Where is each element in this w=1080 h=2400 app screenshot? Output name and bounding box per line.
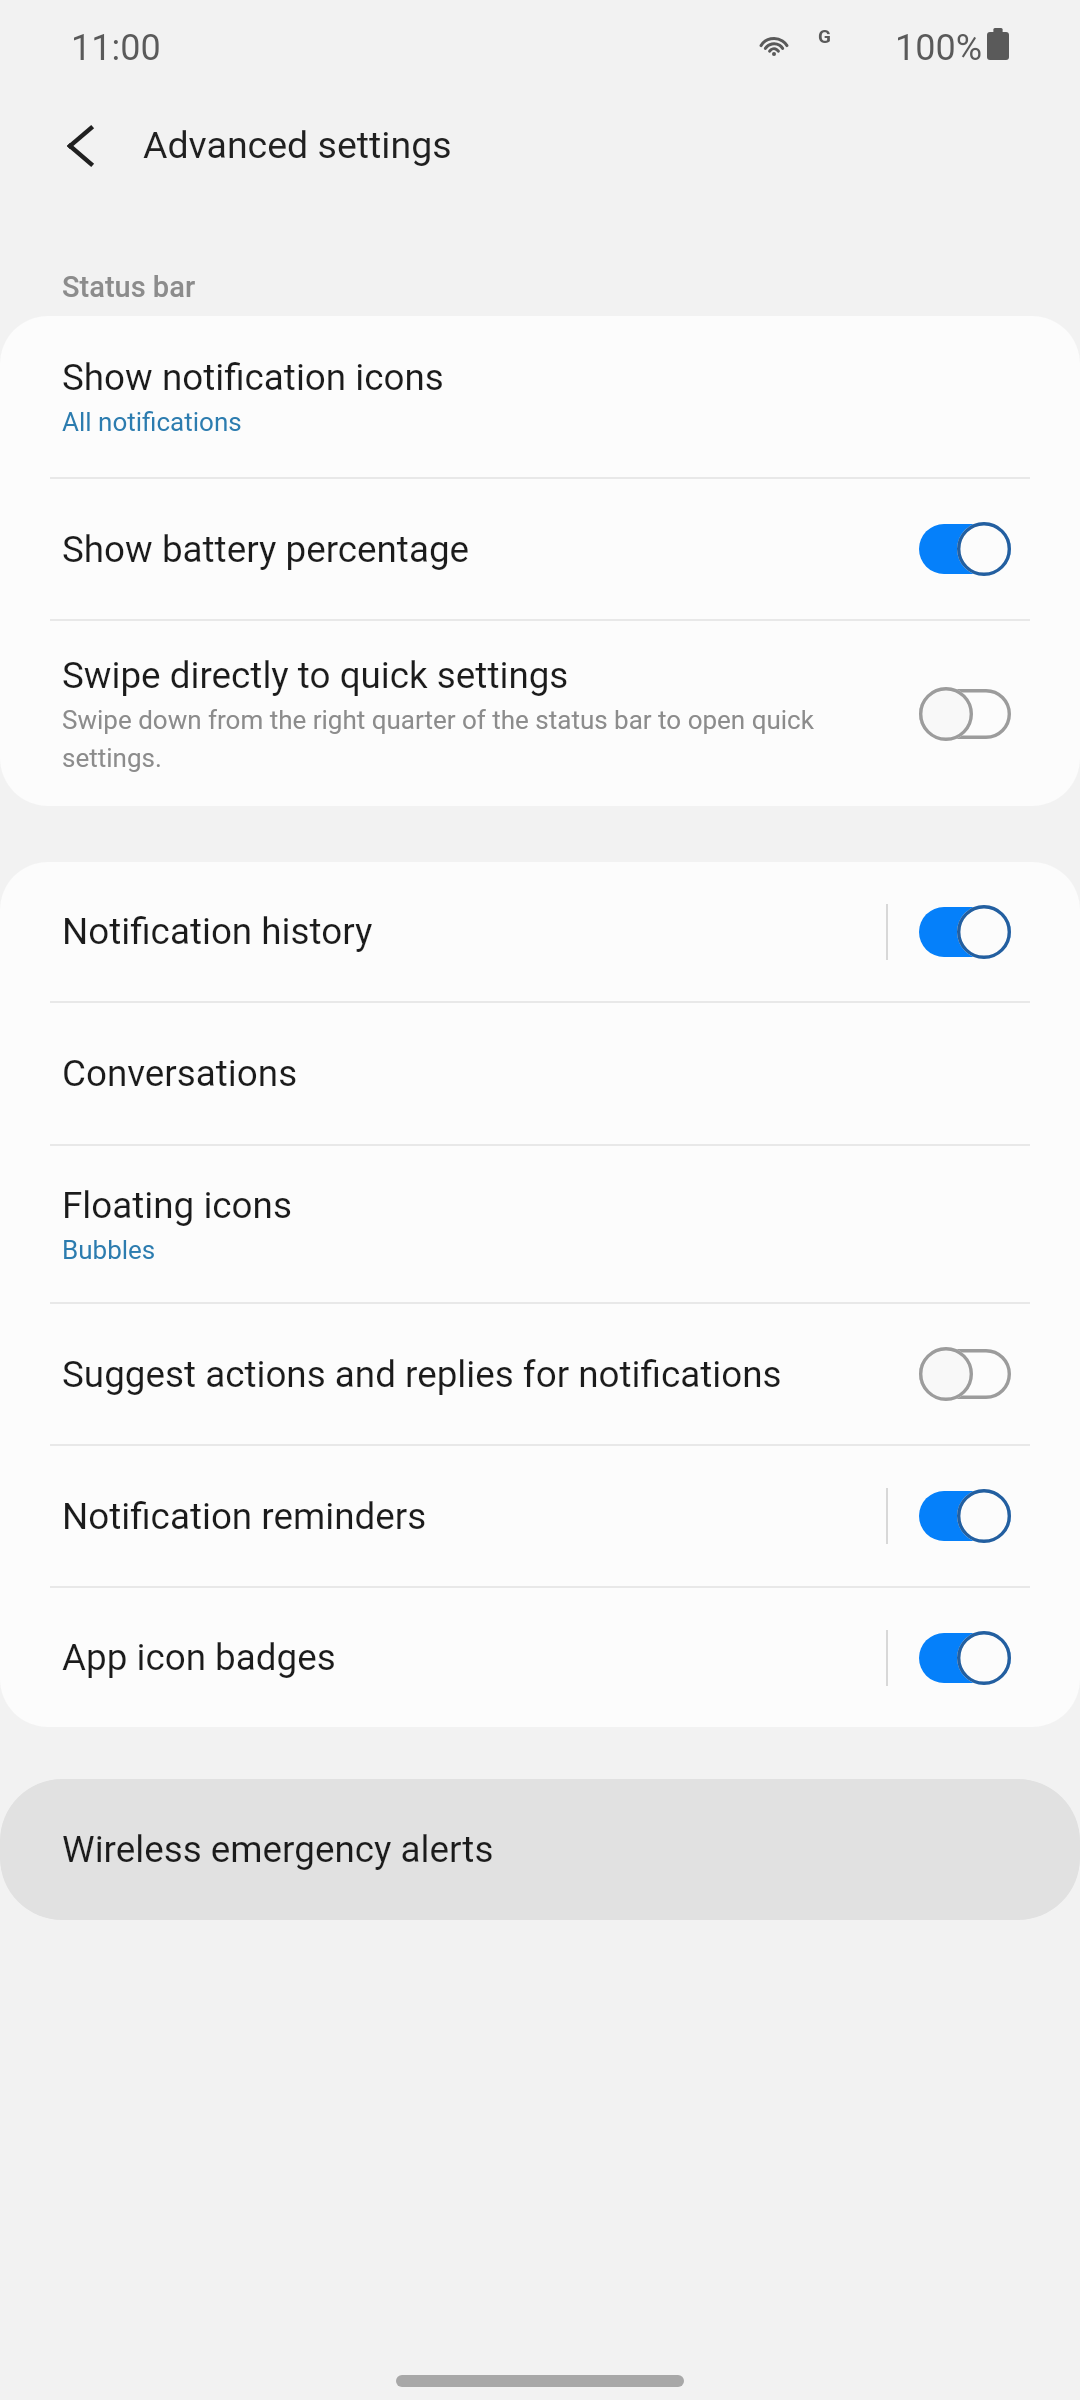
button[interactable]: Navigate up	[32, 98, 128, 194]
staticText: Status bar	[62, 270, 196, 304]
button[interactable]: On	[918, 1487, 1012, 1545]
staticText: 100%	[895, 27, 983, 69]
button[interactable]: App icon badges	[0, 1588, 1080, 1727]
staticText: Advanced settings	[143, 123, 452, 167]
staticText: 11:00	[71, 27, 161, 69]
staticText: App icon badges	[62, 1636, 886, 1679]
button[interactable]: Floating icons	[0, 1146, 1080, 1302]
button[interactable]: Notification reminders	[0, 1446, 1080, 1586]
staticText: Conversations	[62, 1052, 298, 1095]
button[interactable]: Show battery percentage	[0, 479, 1080, 619]
staticText: Show notification icons	[62, 356, 444, 399]
staticText: Swipe directly to quick settings	[62, 654, 569, 697]
button[interactable]: Off	[918, 1345, 1012, 1403]
staticText: Wireless emergency alerts	[62, 1828, 494, 1871]
button[interactable]: On	[918, 903, 1012, 961]
button[interactable]: Conversations	[0, 1003, 1080, 1144]
staticText: G	[818, 25, 831, 47]
staticText: Notification history	[62, 910, 886, 953]
button[interactable]: On	[918, 1629, 1012, 1687]
button[interactable]: Suggest actions and replies for notifica…	[0, 1304, 1080, 1444]
button[interactable]: Off	[918, 685, 1012, 743]
staticText: All notifications	[62, 407, 242, 437]
button[interactable]: Notification history	[0, 862, 1080, 1001]
button[interactable]: Show notification icons	[0, 316, 1080, 477]
staticText: Suggest actions and replies for notifica…	[62, 1353, 918, 1396]
staticText: Swipe down from the right quarter of the…	[62, 705, 894, 773]
button[interactable]: On	[918, 520, 1012, 578]
button[interactable]: Wireless emergency alerts	[0, 1779, 1080, 1920]
staticText: Bubbles	[62, 1235, 156, 1265]
staticText: Notification reminders	[62, 1495, 886, 1538]
staticText: Floating icons	[62, 1184, 292, 1227]
staticText: Show battery percentage	[62, 528, 918, 571]
button[interactable]: Swipe directly to quick settings	[0, 621, 1080, 806]
